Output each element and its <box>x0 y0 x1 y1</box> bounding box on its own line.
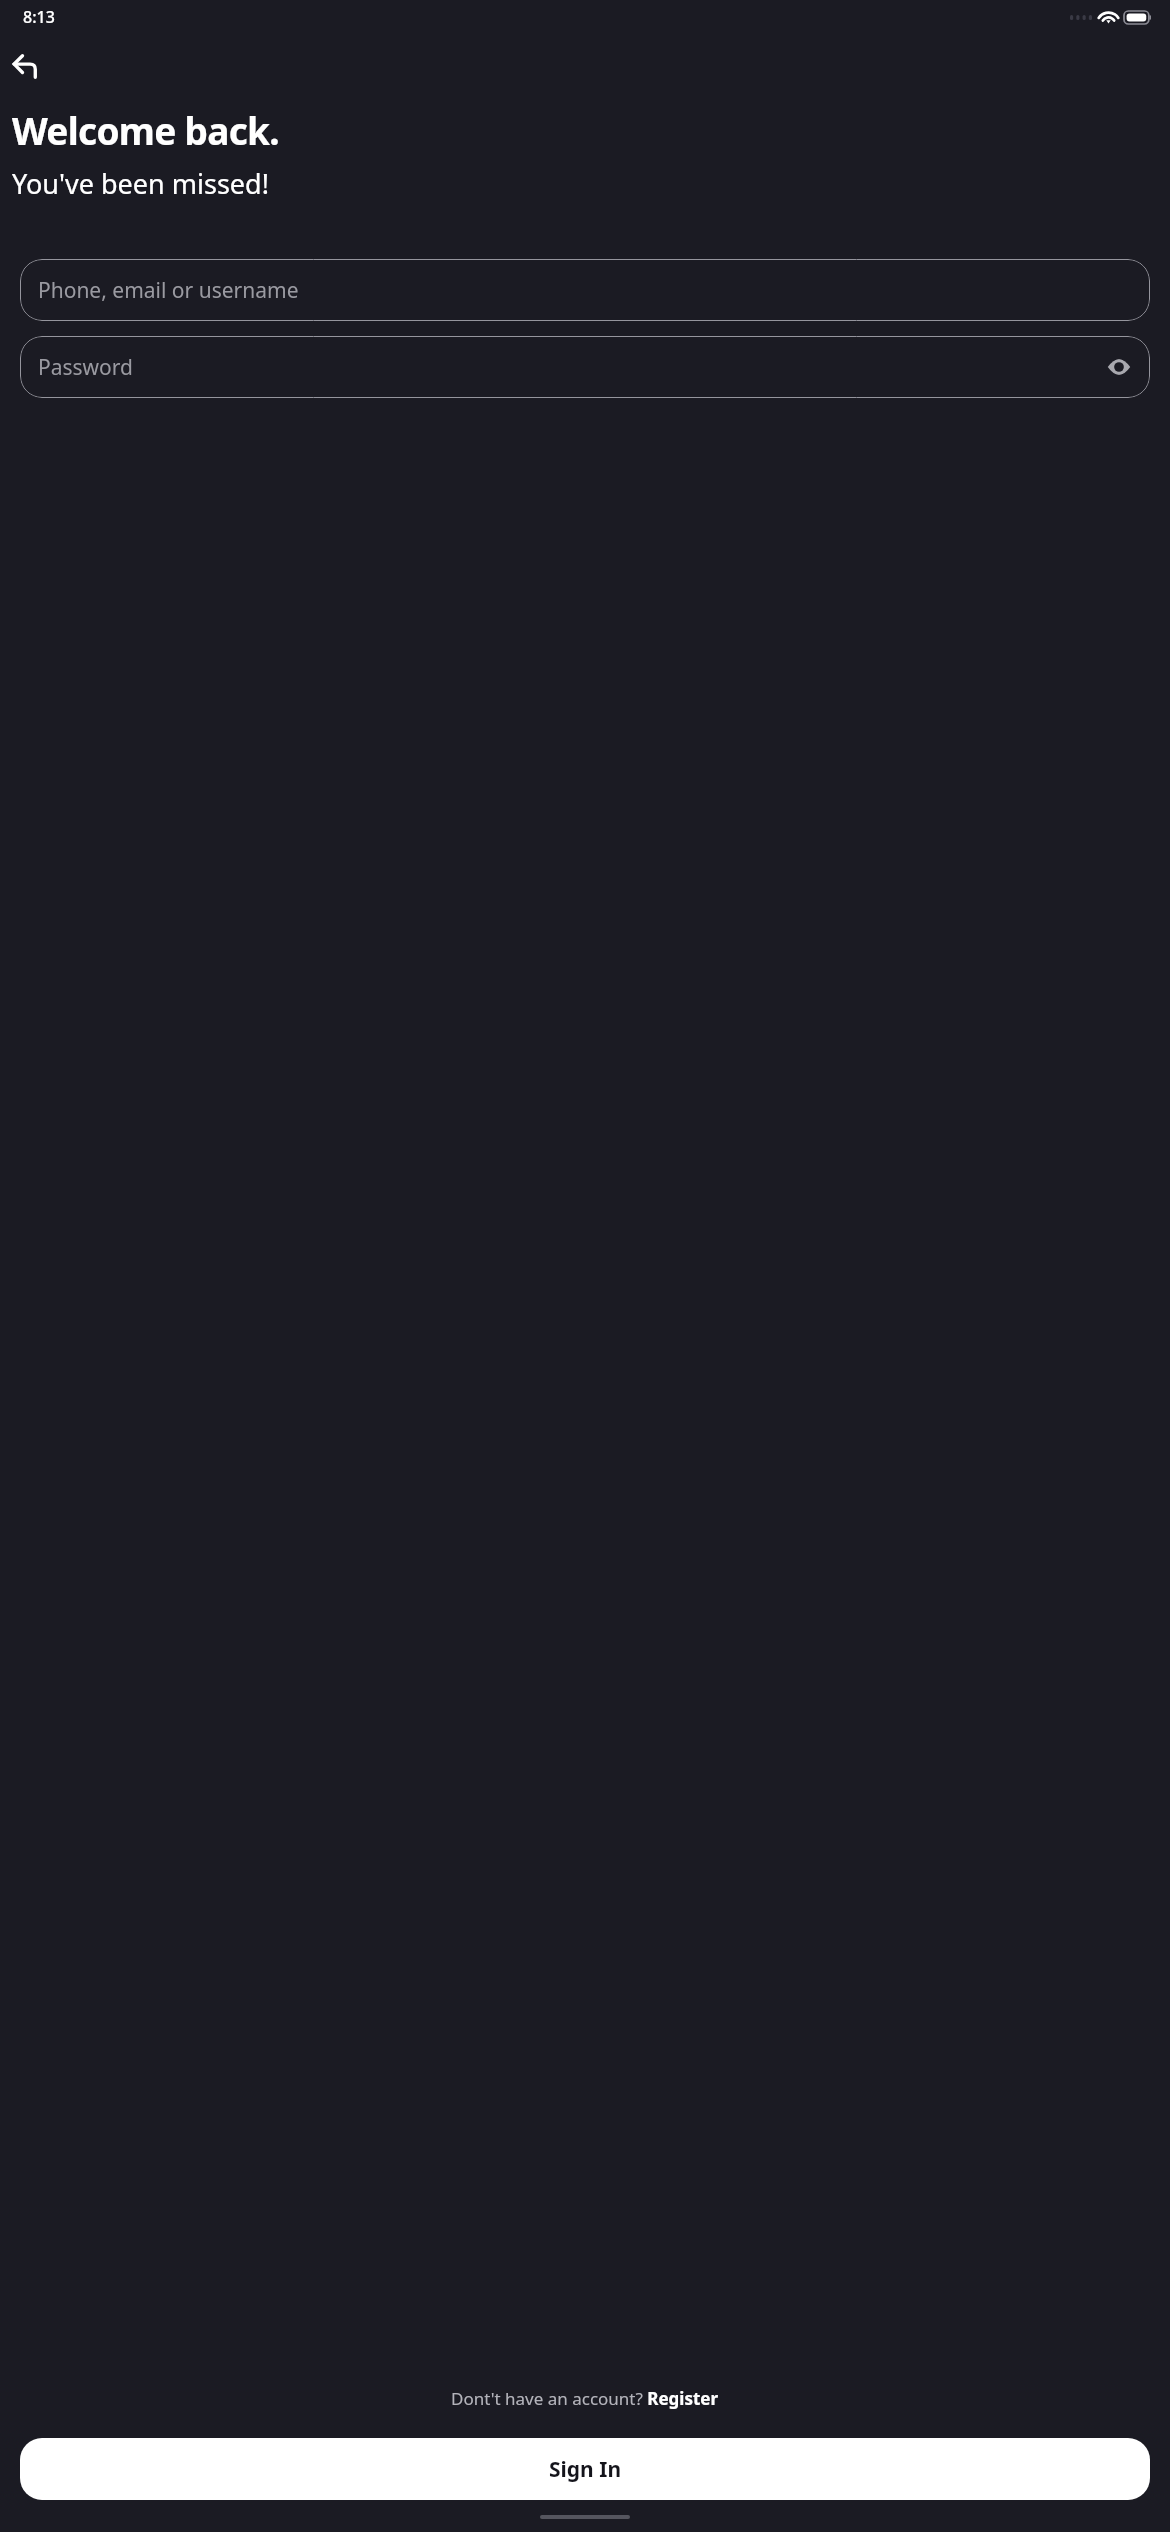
button[interactable]: Back <box>10 51 42 83</box>
button[interactable]: Show password <box>1102 350 1136 384</box>
staticText: Sign In <box>549 2455 622 2484</box>
staticText: You've been missed! <box>12 165 269 202</box>
button[interactable]: Password <box>20 336 1150 398</box>
staticText: Phone, email or username <box>38 276 299 305</box>
staticText: 8:13 <box>23 6 55 28</box>
button[interactable]: Sign In <box>20 2438 1150 2500</box>
button[interactable]: Phone, email or username <box>20 259 1150 321</box>
staticText: Dont't have an account? Register <box>451 2387 719 2410</box>
staticText: Password <box>38 353 133 382</box>
staticText: Welcome back. <box>12 105 280 155</box>
button[interactable]: Dont't have an account? Register <box>445 2385 725 2412</box>
